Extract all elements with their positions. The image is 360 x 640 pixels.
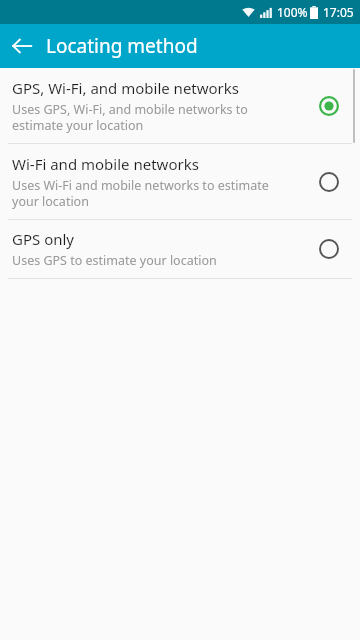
- button[interactable]: Wi-Fi and mobile networks: [0, 144, 360, 219]
- button[interactable]: GPS, Wi-Fi, and mobile networks: [0, 68, 360, 143]
- staticText: 17:05: [323, 4, 354, 20]
- staticText: Uses GPS to estimate your location: [12, 252, 280, 269]
- staticText: Locating method: [46, 33, 198, 59]
- staticText: Uses GPS, Wi-Fi, and mobile networks to …: [12, 101, 280, 133]
- staticText: GPS, Wi-Fi, and mobile networks: [12, 78, 240, 98]
- staticText: Wi-Fi and mobile networks: [12, 154, 199, 174]
- staticText: GPS only: [12, 229, 74, 249]
- button[interactable]: Navigate up: [0, 24, 44, 68]
- staticText: 100%: [277, 4, 308, 20]
- staticText: Uses Wi-Fi and mobile networks to estima…: [12, 177, 280, 209]
- button[interactable]: GPS only: [0, 220, 360, 278]
